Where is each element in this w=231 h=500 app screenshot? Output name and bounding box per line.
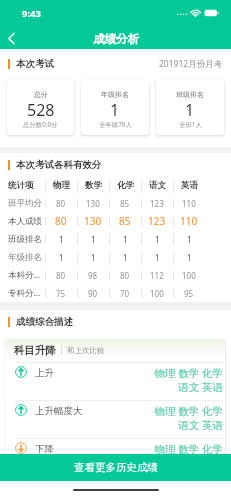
staticText: 语文 英语 bbox=[178, 418, 223, 432]
staticText: 总分数0.0分 bbox=[23, 120, 58, 129]
staticText: 1 bbox=[185, 99, 195, 121]
staticText: 物理 bbox=[53, 180, 70, 191]
staticText: 1 bbox=[155, 252, 160, 263]
staticText: 成绩分析 bbox=[93, 32, 139, 46]
button[interactable]: 年级排名 bbox=[81, 80, 149, 135]
staticText: 总分 bbox=[34, 90, 48, 99]
staticText: 语文 bbox=[149, 180, 166, 191]
staticText: 1 bbox=[187, 234, 192, 245]
staticText: 本人成绩 bbox=[8, 216, 42, 227]
staticText: 100 bbox=[150, 288, 164, 299]
staticText: 年级排名 bbox=[8, 252, 42, 263]
staticText: 528 bbox=[27, 99, 55, 121]
staticText: 物理 数学 化学 bbox=[154, 404, 223, 418]
staticText: 全年级70人 bbox=[99, 120, 132, 129]
staticText: 专科分... bbox=[8, 287, 41, 299]
button[interactable]: 上升 bbox=[15, 363, 223, 400]
button[interactable]: Back bbox=[0, 28, 24, 49]
staticText: 80 bbox=[56, 198, 66, 209]
button[interactable]: 查看更多历史成绩 bbox=[0, 454, 231, 481]
staticText: 物理 数学 化学 bbox=[154, 366, 223, 380]
staticText: 123 bbox=[148, 214, 166, 228]
staticText: 110 bbox=[180, 214, 198, 228]
staticText: 130 bbox=[84, 214, 102, 228]
staticText: 112 bbox=[150, 270, 164, 281]
staticText: 成绩综合描述 bbox=[16, 316, 73, 328]
staticText: 数学 bbox=[85, 180, 102, 191]
staticText: 201912月份月考 bbox=[159, 58, 223, 70]
staticText: 语文 英语 bbox=[178, 380, 223, 394]
staticText: 1 bbox=[59, 252, 64, 263]
staticText: 本科分... bbox=[8, 269, 41, 281]
staticText: 上升 bbox=[35, 367, 54, 379]
staticText: 123 bbox=[150, 198, 164, 209]
staticText: 下降 bbox=[35, 443, 54, 454]
button[interactable]: 上升幅度大 bbox=[15, 401, 223, 438]
button[interactable]: 下降 bbox=[15, 439, 223, 454]
staticText: 85 bbox=[119, 214, 131, 228]
staticText: 科目升降 bbox=[14, 344, 56, 357]
staticText: 90 bbox=[88, 288, 98, 299]
staticText: 统计项 bbox=[8, 180, 34, 191]
staticText: 物理 数学 化学 bbox=[154, 442, 223, 454]
staticText: 1 bbox=[123, 234, 128, 245]
staticText: 班级排名 bbox=[176, 90, 204, 99]
staticText: 查看更多历史成绩 bbox=[74, 461, 158, 474]
staticText: 英语 bbox=[181, 180, 198, 191]
staticText: 98 bbox=[88, 270, 98, 281]
button[interactable]: 总分 bbox=[7, 80, 74, 135]
staticText: 1 bbox=[155, 234, 160, 245]
staticText: 1 bbox=[91, 252, 96, 263]
staticText: 95 bbox=[184, 288, 194, 299]
staticText: 130 bbox=[86, 198, 100, 209]
staticText: 本次考试 bbox=[16, 58, 54, 70]
staticText: 75 bbox=[56, 288, 66, 299]
staticText: 9:43 bbox=[22, 7, 41, 20]
staticText: 上升幅度大 bbox=[35, 405, 83, 417]
staticText: 1 bbox=[59, 234, 64, 245]
staticText: 80 bbox=[55, 214, 67, 228]
staticText: 班平均分 bbox=[8, 198, 42, 209]
staticText: 1 bbox=[91, 234, 96, 245]
staticText: 1 bbox=[123, 252, 128, 263]
staticText: 化学 bbox=[117, 180, 134, 191]
staticText: 70 bbox=[120, 288, 130, 299]
staticText: 班级排名 bbox=[8, 234, 42, 245]
staticText: 全班1人 bbox=[179, 120, 202, 129]
staticText: 1 bbox=[187, 252, 192, 263]
staticText: 本次考试各科有效分 bbox=[16, 159, 102, 171]
staticText: 80 bbox=[56, 270, 66, 281]
staticText: 80 bbox=[120, 270, 130, 281]
staticText: 100 bbox=[182, 270, 196, 281]
staticText: 1 bbox=[110, 99, 120, 121]
staticText: 和上次比较 bbox=[67, 346, 105, 355]
staticText: 110 bbox=[182, 198, 196, 209]
staticText: 85 bbox=[120, 198, 130, 209]
button[interactable]: 班级排名 bbox=[156, 80, 224, 135]
staticText: 年级排名 bbox=[101, 90, 129, 99]
